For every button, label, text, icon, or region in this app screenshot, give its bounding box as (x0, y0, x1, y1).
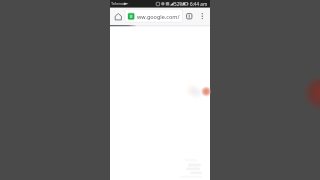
button[interactable]: Switch tabs, 1 open tab (186, 7, 197, 25)
button[interactable]: More options (202, 7, 210, 25)
staticText: ● ■ (161, 1, 170, 7)
button[interactable]: Search or type web address (124, 7, 183, 25)
staticText: 52% (174, 1, 184, 7)
button[interactable]: Home (110, 7, 124, 25)
staticText: ww.google.com/ (137, 13, 180, 20)
staticText: 6:44 am (190, 1, 208, 7)
staticText: Telenor (111, 1, 126, 6)
